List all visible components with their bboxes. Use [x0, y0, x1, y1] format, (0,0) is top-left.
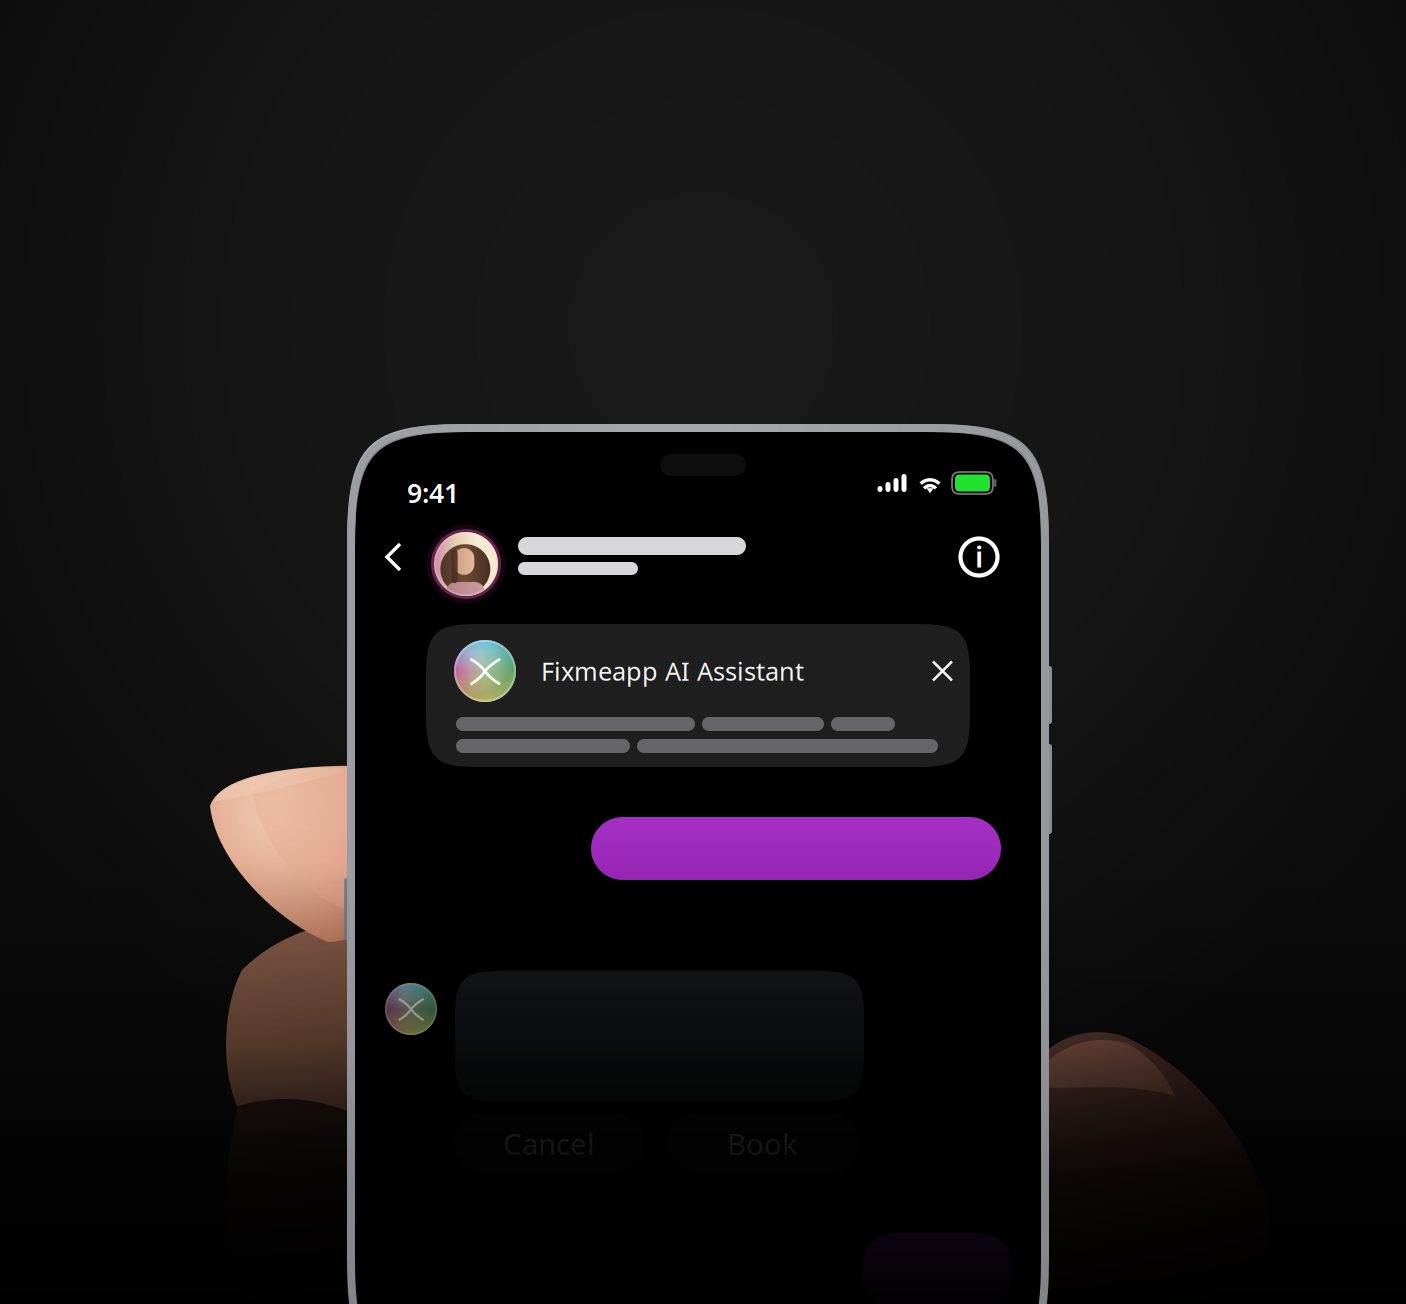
staticText: Cancel [503, 1124, 595, 1163]
button[interactable]: Dismiss [919, 647, 966, 694]
button[interactable]: Back [355, 525, 434, 589]
button[interactable]: Cancel [455, 1114, 643, 1173]
staticText: Fixmeapp AI Assistant [541, 654, 804, 688]
button[interactable]: Info [951, 529, 1041, 585]
staticText: 9:41 [407, 475, 459, 510]
staticText: i [975, 536, 983, 575]
staticText: Book [727, 1124, 798, 1163]
button[interactable] [434, 519, 746, 595]
button[interactable]: Book [667, 1114, 858, 1173]
